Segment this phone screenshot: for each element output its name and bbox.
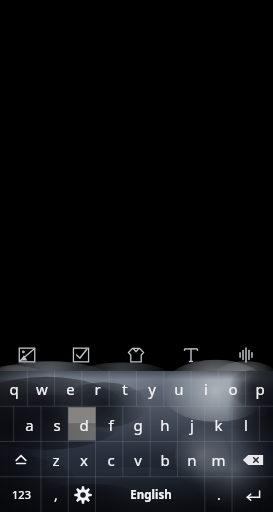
staticText: u <box>174 379 184 399</box>
staticText: b <box>160 450 170 470</box>
button[interactable]: Theme <box>108 338 163 371</box>
staticText: p <box>255 379 265 399</box>
button[interactable]: 123 <box>0 477 42 512</box>
staticText: c <box>107 450 115 470</box>
button[interactable]: q <box>0 371 28 407</box>
staticText: i <box>204 379 208 399</box>
button[interactable]: Clipboard <box>54 338 108 371</box>
staticText: z <box>52 450 60 470</box>
staticText: m <box>211 450 226 470</box>
button[interactable]: d <box>70 407 97 442</box>
staticText: h <box>160 415 170 435</box>
button[interactable]: Settings <box>69 477 96 512</box>
button[interactable]: m <box>205 442 232 477</box>
staticText: English <box>130 487 172 503</box>
button[interactable]: i <box>192 371 219 407</box>
staticText: 123 <box>12 487 31 502</box>
staticText: w <box>36 379 48 399</box>
button[interactable]: l <box>232 407 259 442</box>
button[interactable]: , <box>42 477 69 512</box>
button[interactable]: v <box>124 442 151 477</box>
button[interactable]: Sticker <box>0 338 54 371</box>
button[interactable]: Enter <box>232 477 273 512</box>
button[interactable]: k <box>205 407 232 442</box>
button[interactable]: e <box>56 371 84 407</box>
staticText: g <box>133 415 143 435</box>
button[interactable]: z <box>42 442 70 477</box>
button[interactable]: w <box>28 371 56 407</box>
staticText: s <box>53 415 61 435</box>
button[interactable]: . <box>205 477 232 512</box>
button[interactable]: u <box>165 371 192 407</box>
button[interactable]: o <box>219 371 246 407</box>
button[interactable]: j <box>178 407 205 442</box>
button[interactable]: t <box>111 371 138 407</box>
button[interactable]: x <box>70 442 97 477</box>
staticText: n <box>187 450 197 470</box>
button[interactable]: r <box>84 371 111 407</box>
button[interactable]: p <box>246 371 273 407</box>
button[interactable]: n <box>178 442 205 477</box>
staticText: v <box>134 450 142 470</box>
button[interactable]: f <box>97 407 124 442</box>
button[interactable]: g <box>124 407 151 442</box>
button[interactable]: b <box>151 442 178 477</box>
staticText: q <box>9 379 19 399</box>
staticText: l <box>244 415 248 435</box>
button[interactable]: y <box>138 371 165 407</box>
button[interactable]: Backspace <box>232 442 273 477</box>
staticText: y <box>148 379 156 399</box>
button[interactable]: s <box>43 407 70 442</box>
staticText: d <box>79 415 89 435</box>
staticText: r <box>94 379 101 399</box>
button[interactable]: Voice input <box>218 338 273 371</box>
button[interactable]: Shift <box>0 442 42 477</box>
button[interactable]: Text <box>163 338 218 371</box>
staticText: x <box>80 450 88 470</box>
staticText: k <box>214 415 223 435</box>
staticText: , <box>54 485 58 504</box>
staticText: e <box>66 379 75 399</box>
button[interactable]: c <box>97 442 124 477</box>
staticText: t <box>122 379 128 399</box>
staticText: f <box>108 415 114 435</box>
button[interactable]: English <box>96 477 205 512</box>
button[interactable]: h <box>151 407 178 442</box>
staticText: . <box>217 485 221 504</box>
staticText: o <box>228 379 238 399</box>
button[interactable]: a <box>15 407 43 442</box>
staticText: j <box>190 415 194 435</box>
staticText: a <box>25 415 34 435</box>
